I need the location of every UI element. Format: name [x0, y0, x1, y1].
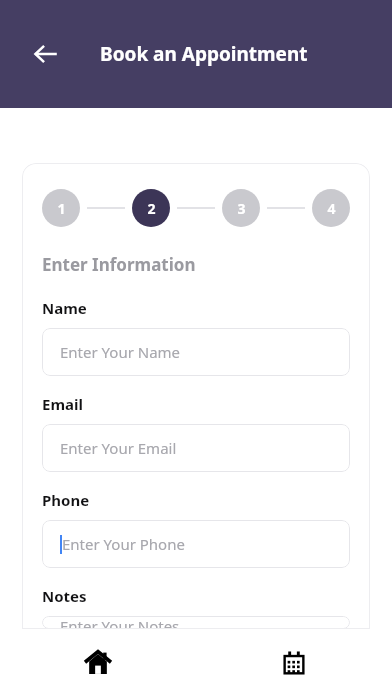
- button[interactable]: 2: [132, 189, 170, 227]
- button[interactable]: Enter Your Email: [42, 424, 350, 472]
- button[interactable]: Enter Your Name: [42, 328, 350, 376]
- staticText: 3: [237, 199, 246, 218]
- staticText: Book an Appointment: [100, 41, 308, 67]
- button[interactable]: 3: [222, 189, 260, 227]
- button[interactable]: Appointments: [196, 629, 392, 696]
- button[interactable]: 1: [42, 189, 80, 227]
- staticText: Enter Information: [42, 253, 196, 276]
- staticText: Enter Your Notes: [60, 616, 180, 629]
- staticText: 4: [327, 199, 336, 218]
- staticText: Name: [42, 298, 87, 318]
- button[interactable]: Enter Your Phone: [42, 520, 350, 568]
- staticText: Enter Your Name: [60, 342, 181, 362]
- staticText: Notes: [42, 586, 87, 606]
- button[interactable]: Back: [24, 32, 68, 76]
- staticText: Email: [42, 394, 83, 414]
- button[interactable]: Home: [0, 629, 196, 696]
- button[interactable]: Enter Your Notes: [42, 616, 350, 629]
- staticText: Enter Your Phone: [62, 534, 185, 554]
- button[interactable]: 4: [312, 189, 350, 227]
- staticText: Enter Your Email: [60, 438, 177, 458]
- staticText: Phone: [42, 490, 90, 510]
- staticText: 1: [57, 199, 66, 218]
- staticText: 2: [147, 199, 156, 218]
